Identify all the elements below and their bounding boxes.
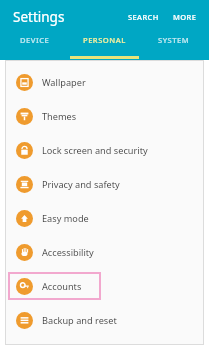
button[interactable]: Wallpaper <box>5 65 204 99</box>
staticText: Privacy and safety <box>42 178 120 191</box>
button[interactable]: MORE <box>168 6 202 28</box>
button[interactable]: SEARCH <box>123 6 164 28</box>
staticText: Settings <box>13 8 65 26</box>
button[interactable]: Easy mode <box>5 201 204 235</box>
staticText: Wallpaper <box>42 76 86 89</box>
staticText: SYSTEM <box>158 35 190 45</box>
staticText: Easy mode <box>42 212 89 225</box>
button[interactable]: SYSTEM <box>139 33 209 45</box>
button[interactable]: PERSONAL <box>69 33 139 45</box>
button[interactable]: DEVICE <box>0 33 69 45</box>
staticText: Themes <box>42 110 77 123</box>
button[interactable]: Themes <box>5 99 204 133</box>
button[interactable]: Privacy and safety <box>5 167 204 201</box>
staticText: PERSONAL <box>83 35 126 45</box>
button[interactable]: Backup and reset <box>5 303 204 337</box>
staticText: Accounts <box>42 280 82 293</box>
staticText: Accessibility <box>42 246 94 259</box>
button[interactable]: Accessibility <box>5 235 204 269</box>
staticText: DEVICE <box>20 35 50 45</box>
button[interactable]: Lock screen and security <box>5 133 204 167</box>
staticText: Backup and reset <box>42 314 117 327</box>
staticText: Lock screen and security <box>42 144 148 157</box>
staticText: MORE <box>173 12 197 22</box>
button[interactable]: Accounts <box>5 269 204 303</box>
staticText: SEARCH <box>128 12 159 22</box>
